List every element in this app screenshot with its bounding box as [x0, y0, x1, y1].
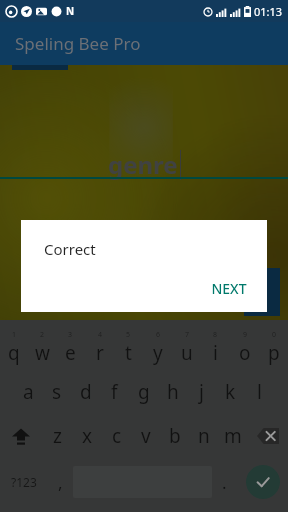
staticText: Correct: [44, 239, 96, 259]
staticText: 4: [98, 330, 103, 340]
button[interactable]: 0: [259, 326, 288, 370]
staticText: N: [66, 4, 75, 18]
button[interactable]: l: [245, 370, 274, 414]
staticText: NEXT: [211, 279, 247, 298]
button[interactable]: j: [187, 370, 216, 414]
button[interactable]: 9: [230, 326, 259, 370]
staticText: r: [96, 340, 104, 366]
staticText: e: [65, 340, 76, 366]
button[interactable]: z: [42, 414, 72, 458]
staticText: o: [239, 340, 251, 366]
staticText: g: [138, 379, 150, 405]
staticText: 9: [243, 330, 248, 340]
button[interactable]: v: [131, 414, 160, 458]
staticText: 1: [12, 330, 17, 340]
staticText: .: [222, 471, 227, 494]
button[interactable]: n: [189, 414, 218, 458]
button[interactable]: 7: [172, 326, 201, 370]
button[interactable]: 4: [85, 326, 114, 370]
button[interactable]: d: [71, 370, 100, 414]
staticText: u: [181, 340, 193, 366]
button[interactable]: ?123: [0, 458, 48, 506]
button[interactable]: 6: [143, 326, 172, 370]
staticText: 2: [40, 330, 45, 340]
staticText: p: [268, 340, 280, 366]
button[interactable]: c: [102, 414, 131, 458]
staticText: 3: [68, 330, 73, 340]
staticText: k: [225, 379, 236, 405]
button[interactable]: x: [72, 414, 102, 458]
button[interactable]: k: [216, 370, 245, 414]
button[interactable]: a: [14, 370, 42, 414]
staticText: w: [35, 340, 50, 366]
button[interactable]: g: [129, 370, 158, 414]
staticText: 0: [272, 330, 277, 340]
button[interactable]: Shift: [0, 414, 42, 458]
staticText: q: [8, 340, 20, 366]
staticText: c: [112, 423, 122, 449]
button[interactable]: f: [100, 370, 129, 414]
button[interactable]: Enter: [237, 458, 288, 506]
staticText: 5: [126, 330, 131, 340]
staticText: 8: [213, 330, 218, 340]
staticText: i: [213, 340, 218, 366]
staticText: l: [257, 379, 262, 405]
button[interactable]: b: [160, 414, 189, 458]
button[interactable]: 8: [201, 326, 230, 370]
staticText: 01:13: [254, 4, 283, 19]
staticText: y: [153, 340, 163, 366]
button[interactable]: NEXT: [199, 271, 259, 306]
staticText: x: [82, 423, 93, 449]
staticText: z: [53, 423, 62, 449]
staticText: genre: [108, 148, 178, 181]
staticText: j: [199, 379, 204, 405]
staticText: Speling Bee Pro: [15, 32, 141, 55]
staticText: 6: [156, 330, 161, 340]
staticText: b: [169, 423, 181, 449]
staticText: h: [167, 379, 179, 405]
button[interactable]: 2: [28, 326, 56, 370]
button[interactable]: 5: [114, 326, 143, 370]
button[interactable]: Backspace: [247, 414, 288, 458]
staticText: Time Left 3: [94, 20, 194, 45]
staticText: s: [52, 379, 62, 405]
staticText: a: [23, 379, 34, 405]
button[interactable]: 3: [56, 326, 85, 370]
staticText: v: [141, 423, 151, 449]
staticText: ?123: [11, 474, 37, 490]
staticText: m: [224, 423, 242, 449]
button[interactable]: m: [218, 414, 247, 458]
staticText: ,: [58, 471, 63, 494]
button[interactable]: Record: [12, 22, 68, 70]
button[interactable]: h: [158, 370, 187, 414]
staticText: t: [125, 340, 132, 366]
button[interactable]: 1: [0, 326, 28, 370]
staticText: f: [111, 379, 118, 405]
staticText: d: [80, 379, 92, 405]
staticText: 7: [185, 330, 190, 340]
button[interactable]: s: [42, 370, 71, 414]
staticText: n: [198, 423, 210, 449]
